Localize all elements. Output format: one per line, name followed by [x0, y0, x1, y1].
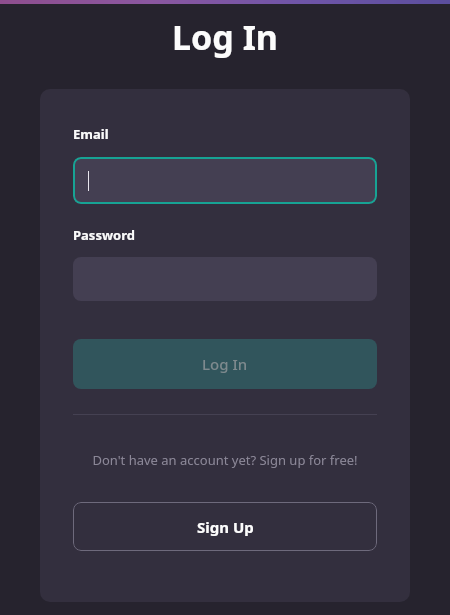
staticText: Don't have an account yet? Sign up for f…	[73, 451, 377, 469]
staticText: Log In	[172, 14, 278, 60]
staticText: Log In	[202, 354, 248, 374]
button[interactable]: Log In	[73, 339, 377, 389]
staticText: Email	[73, 125, 109, 143]
button[interactable]: Email input field	[73, 157, 377, 204]
staticText: Password	[73, 226, 135, 244]
staticText: Sign Up	[197, 517, 254, 537]
button[interactable]: Sign Up	[73, 502, 377, 551]
